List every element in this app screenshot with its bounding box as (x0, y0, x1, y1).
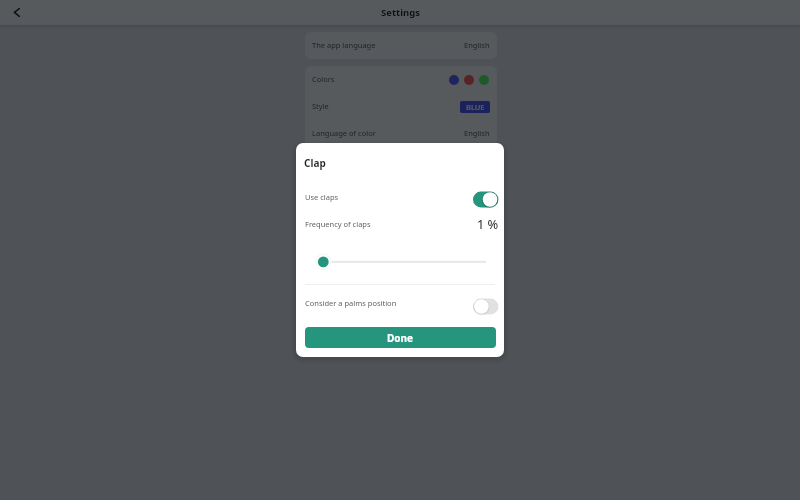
staticText: Consider a palms position (305, 298, 397, 308)
button[interactable]: Language of color (312, 120, 490, 147)
button[interactable]: Colors (312, 66, 490, 93)
staticText: Style (312, 101, 329, 111)
staticText: Settings (381, 6, 420, 19)
button[interactable]: Done (305, 327, 496, 348)
button[interactable]: Use claps (305, 187, 499, 207)
staticText: Frequency of claps (305, 219, 371, 229)
staticText: Clap (304, 156, 326, 170)
button[interactable]: The app language (312, 32, 490, 59)
button[interactable]: Color swatch (479, 75, 489, 85)
button[interactable]: Color swatch (464, 75, 474, 85)
staticText: BLUE (466, 102, 485, 112)
staticText: Colors (312, 74, 335, 84)
staticText: Done (387, 331, 414, 345)
button[interactable]: Color swatch (449, 75, 459, 85)
staticText: Use claps (305, 192, 339, 202)
button[interactable]: Back (8, 3, 26, 21)
button[interactable]: Toggle on (473, 191, 499, 208)
button[interactable]: Consider a palms position (305, 293, 499, 313)
staticText: English (464, 128, 490, 138)
staticText: 1 % (477, 216, 499, 233)
staticText: English (464, 40, 490, 50)
button[interactable]: Toggle off (473, 298, 499, 315)
staticText: The app language (312, 40, 376, 50)
button[interactable]: Frequency slider (305, 253, 495, 273)
staticText: Language of color (312, 128, 376, 138)
button[interactable]: Style (312, 93, 490, 120)
